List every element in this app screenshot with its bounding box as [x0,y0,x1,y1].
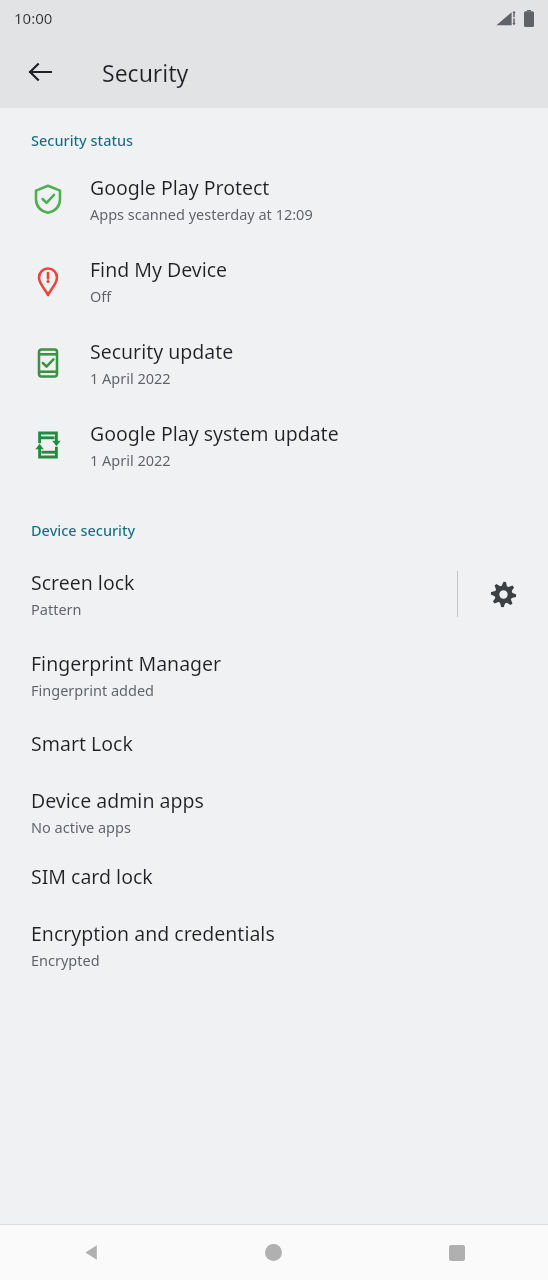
staticText: Screen lock [31,569,135,596]
staticText: Google Play Protect [90,174,270,201]
staticText: Off [90,286,112,306]
staticText: 1 April 2022 [90,368,171,388]
button[interactable]: Encryption and credentials [0,920,548,970]
staticText: Security [102,57,189,88]
staticText: Google Play system update [90,420,339,447]
staticText: Device security [31,520,136,540]
button[interactable]: Recent apps [365,1225,548,1280]
staticText: Apps scanned yesterday at 12:09 [90,204,313,224]
button[interactable]: Find My Device [0,256,548,306]
staticText: Encrypted [31,950,100,970]
staticText: 10:00 [14,8,53,28]
staticText: No active apps [31,817,131,837]
button[interactable]: Screen lock settings [458,564,548,624]
button[interactable]: Google Play system update [0,420,548,470]
button[interactable]: Home [182,1225,365,1280]
staticText: Security update [90,338,234,365]
button[interactable]: Device admin apps [0,787,548,837]
button[interactable]: Back [0,1225,182,1280]
button[interactable]: Smart Lock [0,730,548,757]
staticText: Smart Lock [31,730,133,757]
staticText: Security status [31,130,134,150]
button[interactable]: Google Play Protect [0,174,548,224]
staticText: Fingerprint Manager [31,650,222,677]
staticText: Device admin apps [31,787,204,814]
staticText: Encryption and credentials [31,920,275,947]
button[interactable]: Fingerprint Manager [0,650,548,700]
staticText: Find My Device [90,256,228,283]
staticText: SIM card lock [31,863,153,890]
button[interactable]: Back [16,48,64,96]
button[interactable]: Screen lock [0,565,457,623]
staticText: Fingerprint added [31,680,154,700]
button[interactable]: Security update [0,338,548,388]
staticText: 1 April 2022 [90,450,171,470]
staticText: Pattern [31,599,82,619]
button[interactable]: SIM card lock [0,863,548,890]
